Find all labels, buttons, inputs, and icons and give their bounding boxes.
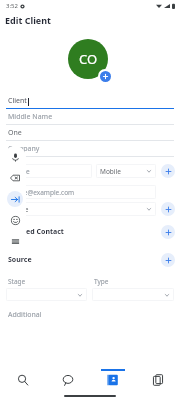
button[interactable]: Home	[6, 202, 156, 216]
button[interactable]: Add Related Contact	[161, 225, 175, 239]
button[interactable]: More options	[7, 233, 23, 249]
button[interactable]: Add email address	[161, 202, 175, 216]
button[interactable]: Change client photo	[68, 39, 112, 83]
button[interactable]: Client	[0, 93, 180, 109]
button[interactable]: One	[0, 125, 180, 141]
button[interactable]: Backspace	[7, 170, 23, 186]
button[interactable]: Voice input	[7, 149, 23, 165]
button[interactable]: Related Contact	[8, 224, 175, 239]
button[interactable]	[92, 288, 174, 301]
button[interactable]: Phone	[6, 164, 92, 178]
staticText: Additional	[8, 310, 42, 320]
button[interactable]: Source	[8, 252, 175, 267]
button[interactable]: Mobile	[96, 164, 156, 178]
staticText: name@example.com	[10, 188, 75, 197]
button[interactable]: Add Source	[161, 253, 175, 267]
staticText: Source	[8, 255, 32, 265]
button[interactable]: Documents	[135, 368, 180, 392]
staticText: CO	[79, 50, 98, 68]
button[interactable]: Search	[0, 368, 45, 392]
button[interactable]: Company	[0, 141, 180, 157]
button[interactable]: name@example.com	[6, 185, 156, 199]
staticText: Stage	[8, 277, 26, 286]
button[interactable]: Add phone number	[161, 164, 175, 178]
staticText: Company	[8, 144, 40, 154]
staticText: Type	[94, 277, 109, 286]
button[interactable]: Messages	[45, 368, 90, 392]
staticText: 3:52	[6, 2, 18, 10]
button[interactable]: Next field	[7, 191, 23, 207]
staticText: Mobile	[100, 167, 121, 176]
staticText: Related Contact	[8, 227, 64, 237]
button[interactable]: Contacts	[90, 368, 135, 392]
button[interactable]: Middle Name	[0, 109, 180, 125]
staticText: Client	[8, 96, 27, 106]
staticText: Middle Name	[8, 112, 53, 122]
staticText: Phone	[10, 167, 30, 176]
staticText: One	[8, 128, 22, 138]
staticText: Home	[10, 205, 29, 214]
button[interactable]	[6, 288, 87, 301]
staticText: Edit Client	[5, 14, 51, 26]
button[interactable]: Emoji	[7, 212, 23, 228]
